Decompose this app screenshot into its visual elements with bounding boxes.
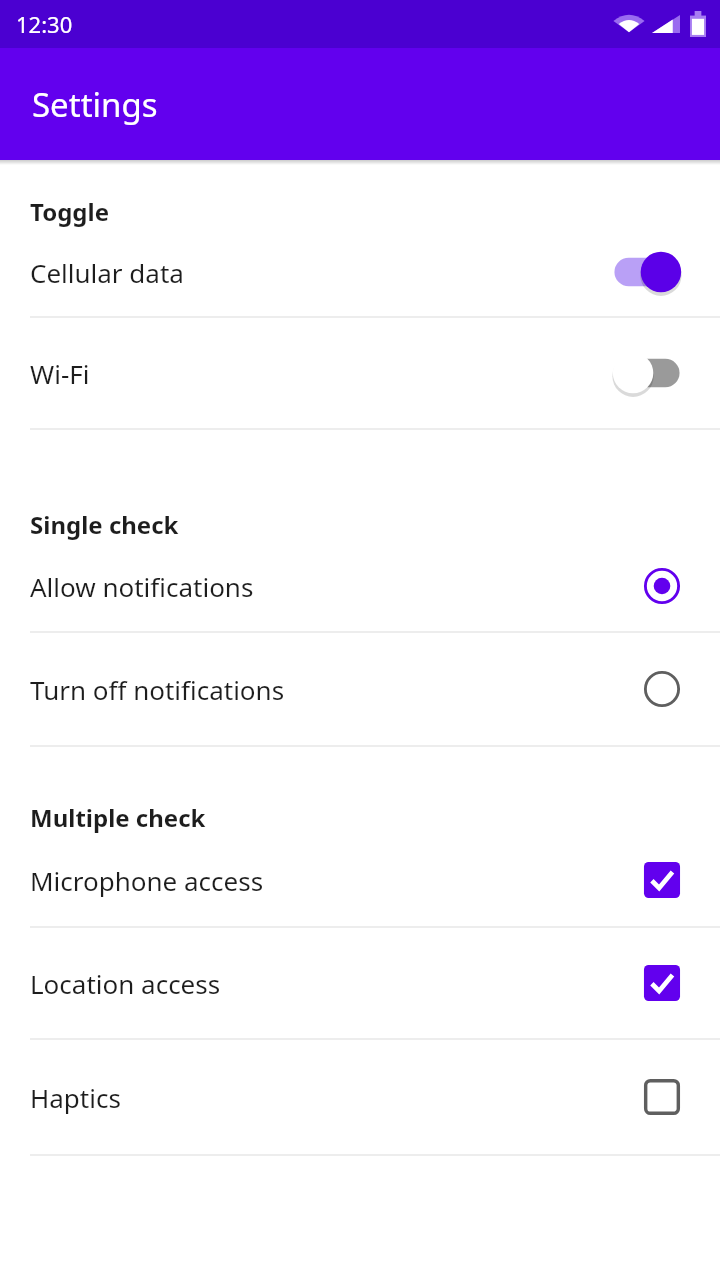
staticText: Wi-Fi [30,356,610,391]
staticText: Toggle [30,195,109,228]
staticText: Allow notifications [30,569,640,604]
staticText: Haptics [30,1080,640,1115]
staticText: 12:30 [16,9,73,39]
staticText: Microphone access [30,863,640,898]
button[interactable]: Allow notifications [0,541,720,631]
button[interactable]: Turn off notifications [0,633,720,745]
staticText: Location access [30,966,640,1001]
button[interactable]: Selected [640,564,684,608]
button[interactable]: Checked [640,858,684,902]
button[interactable]: Cellular data [0,228,720,316]
staticText: Turn off notifications [30,672,640,707]
button[interactable]: Unchecked [640,1075,684,1119]
button[interactable]: Location access [0,928,720,1038]
button[interactable]: Wi-Fi [0,318,720,428]
button[interactable]: Switch on [610,249,684,295]
button[interactable]: Microphone access [0,834,720,926]
button[interactable]: Haptics [0,1040,720,1154]
button[interactable]: Checked [640,961,684,1005]
staticText: Single check [30,508,179,541]
staticText: Cellular data [30,255,610,290]
button[interactable]: Not selected [640,667,684,711]
staticText: Settings [32,82,158,127]
staticText: Multiple check [30,801,206,834]
button[interactable]: Switch off [610,350,684,396]
